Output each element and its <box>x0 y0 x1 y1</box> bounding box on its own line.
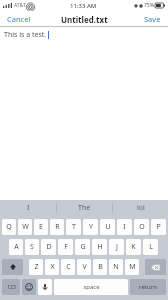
staticText: J <box>116 242 118 252</box>
button[interactable]: K <box>126 239 141 255</box>
button[interactable]: U <box>100 219 115 235</box>
button[interactable]: Dictate <box>38 279 52 295</box>
button[interactable]: I <box>0 200 56 216</box>
staticText: K <box>131 242 136 252</box>
staticText: H <box>97 242 103 252</box>
button[interactable]: G <box>75 239 90 255</box>
staticText: Untitled.txt <box>61 14 108 25</box>
button[interactable]: D <box>41 239 56 255</box>
staticText: B <box>98 262 103 272</box>
staticText: Save <box>144 14 161 24</box>
button[interactable]: L <box>143 239 158 255</box>
staticText: I <box>27 203 30 213</box>
button[interactable]: Backspace <box>145 259 166 275</box>
staticText: W <box>22 222 29 232</box>
staticText: X <box>50 262 55 272</box>
staticText: space <box>83 283 100 291</box>
button[interactable]: Z <box>29 259 43 275</box>
staticText: 11:33 AM <box>70 2 97 10</box>
button[interactable]: B <box>93 259 107 275</box>
button[interactable]: P <box>151 219 166 235</box>
button[interactable]: O <box>134 219 149 235</box>
button[interactable]: A <box>9 239 23 255</box>
staticText: M <box>129 262 136 272</box>
staticText: F <box>64 242 68 252</box>
staticText: Cancel <box>7 14 31 24</box>
button[interactable]: I <box>117 219 132 235</box>
button[interactable]: T <box>66 219 81 235</box>
button[interactable]: H <box>92 239 107 255</box>
staticText: O <box>139 222 145 232</box>
staticText: 123 <box>7 284 16 291</box>
button[interactable]: Cancel <box>4 12 34 26</box>
button[interactable]: V <box>77 259 91 275</box>
staticText: E <box>39 222 43 232</box>
staticText: P <box>156 222 161 232</box>
staticText: L <box>149 242 153 252</box>
button[interactable]: Y <box>83 219 98 235</box>
button[interactable]: X <box>45 259 59 275</box>
button[interactable]: E <box>34 219 48 235</box>
staticText: V <box>82 262 87 272</box>
button[interactable]: M <box>125 259 139 275</box>
staticText: Q <box>6 222 12 232</box>
staticText: T <box>72 222 76 232</box>
button[interactable]: lol <box>113 200 168 216</box>
button[interactable]: Q <box>2 219 16 235</box>
staticText: S <box>30 242 34 252</box>
staticText: This is a test. <box>4 30 47 40</box>
button[interactable]: C <box>61 259 75 275</box>
button[interactable]: return <box>130 279 166 295</box>
staticText: I <box>123 222 126 232</box>
button[interactable]: Save <box>141 12 164 26</box>
button[interactable]: The <box>57 200 112 216</box>
staticText: 75% <box>144 2 154 9</box>
button[interactable]: S <box>25 239 39 255</box>
staticText: A <box>14 242 19 252</box>
button[interactable]: F <box>58 239 73 255</box>
button[interactable]: R <box>50 219 64 235</box>
staticText: D <box>46 242 52 252</box>
button[interactable]: J <box>109 239 124 255</box>
button[interactable]: Shift <box>2 259 23 275</box>
staticText: Y <box>89 222 93 232</box>
staticText: C <box>66 262 71 272</box>
staticText: Z <box>34 262 39 272</box>
staticText: N <box>113 262 119 272</box>
staticText: The <box>78 203 91 213</box>
staticText: AT&T <box>14 2 26 9</box>
button[interactable]: 123 <box>2 279 20 295</box>
button[interactable]: W <box>18 219 32 235</box>
staticText: return <box>139 283 157 291</box>
staticText: lol <box>137 203 145 213</box>
button[interactable]: N <box>109 259 123 275</box>
staticText: U <box>105 222 111 232</box>
staticText: R <box>55 222 60 232</box>
button[interactable]: space <box>54 279 128 295</box>
staticText: G <box>80 242 86 252</box>
button[interactable]: Emoji <box>22 279 36 295</box>
